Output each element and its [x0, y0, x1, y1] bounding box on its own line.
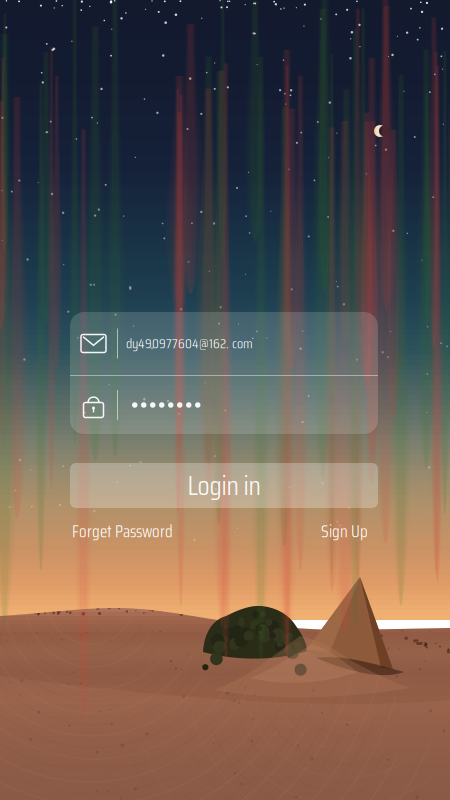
- staticText: Forget Password: [72, 518, 173, 545]
- staticText: Sign Up: [321, 518, 368, 545]
- button[interactable]: Login in: [70, 463, 378, 508]
- button[interactable]: Forget Password: [72, 518, 173, 545]
- staticText: dy490977604@162. com: [126, 332, 253, 354]
- button[interactable]: Sign Up: [321, 518, 368, 545]
- staticText: Login in: [187, 464, 260, 507]
